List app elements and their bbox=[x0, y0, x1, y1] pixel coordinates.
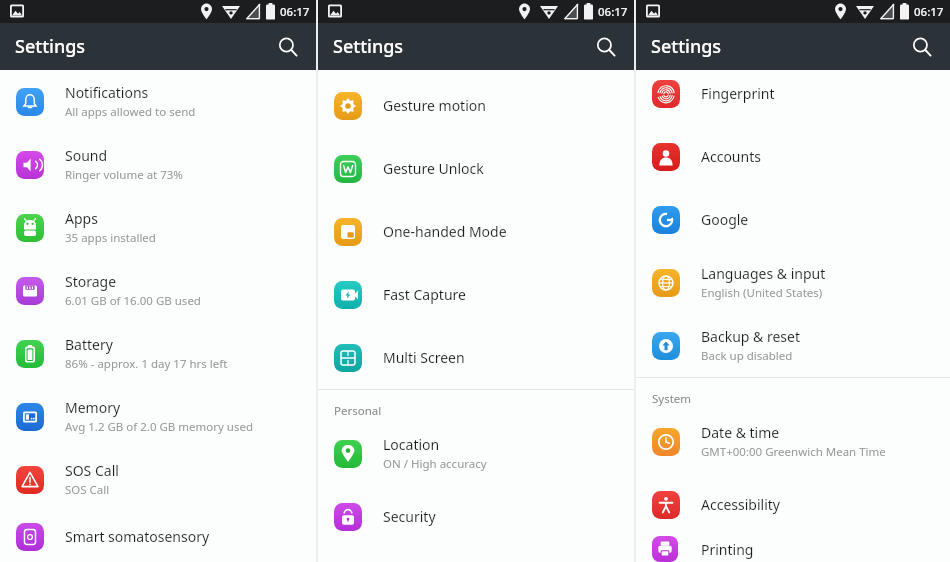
staticText: GMT+00:00 Greenwich Mean Time bbox=[701, 444, 886, 460]
button[interactable]: Location bbox=[318, 422, 634, 485]
button[interactable]: Search bbox=[268, 27, 308, 67]
button[interactable]: Accessibility bbox=[636, 473, 950, 536]
staticText: Accounts bbox=[701, 147, 761, 166]
staticText: Ringer volume at 73% bbox=[65, 167, 183, 183]
button[interactable]: Date & time bbox=[636, 410, 950, 473]
button[interactable]: Apps bbox=[0, 196, 316, 259]
staticText: Multi Screen bbox=[383, 348, 465, 367]
staticText: Notifications bbox=[65, 83, 149, 102]
staticText: Gesture Unlock bbox=[383, 159, 484, 178]
button[interactable]: Fingerprint bbox=[636, 62, 950, 125]
staticText: 06:17 bbox=[598, 4, 628, 20]
button[interactable]: Gesture motion bbox=[318, 74, 634, 137]
staticText: Avg 1.2 GB of 2.0 GB memory used bbox=[65, 419, 254, 435]
button[interactable]: Accounts bbox=[636, 125, 950, 188]
staticText: 06:17 bbox=[914, 4, 944, 20]
button[interactable]: Smart somatosensory bbox=[0, 511, 316, 562]
staticText: Location bbox=[383, 435, 440, 454]
staticText: Back up disabled bbox=[701, 348, 793, 364]
staticText: Accessibility bbox=[701, 495, 780, 514]
button[interactable]: Storage bbox=[0, 259, 316, 322]
staticText: System bbox=[652, 391, 692, 407]
button[interactable]: Printing bbox=[636, 536, 950, 562]
staticText: 6.01 GB of 16.00 GB used bbox=[65, 293, 201, 309]
button[interactable]: Memory bbox=[0, 385, 316, 448]
button[interactable]: Backup & reset bbox=[636, 314, 950, 377]
staticText: Memory bbox=[65, 398, 121, 417]
button[interactable]: Search bbox=[902, 27, 942, 67]
staticText: English (United States) bbox=[701, 285, 823, 301]
staticText: Battery bbox=[65, 335, 113, 354]
button[interactable]: Battery bbox=[0, 322, 316, 385]
staticText: SOS Call bbox=[65, 482, 110, 498]
button[interactable]: Google bbox=[636, 188, 950, 251]
button[interactable]: Languages & input bbox=[636, 251, 950, 314]
staticText: Apps bbox=[65, 209, 98, 228]
staticText: Settings bbox=[651, 34, 722, 59]
staticText: Google bbox=[701, 210, 749, 229]
button[interactable]: Security bbox=[318, 485, 634, 548]
staticText: Personal bbox=[334, 403, 382, 419]
button[interactable]: Search bbox=[586, 27, 626, 67]
staticText: Sound bbox=[65, 146, 108, 165]
staticText: All apps allowed to send bbox=[65, 104, 196, 120]
staticText: Smart somatosensory bbox=[65, 527, 210, 546]
staticText: 35 apps installed bbox=[65, 230, 156, 246]
staticText: Printing bbox=[701, 540, 754, 559]
staticText: SOS Call bbox=[65, 461, 119, 480]
staticText: Settings bbox=[15, 34, 86, 59]
staticText: ON / High accuracy bbox=[383, 456, 487, 472]
button[interactable]: Fast Capture bbox=[318, 263, 634, 326]
button[interactable]: SOS Call bbox=[0, 448, 316, 511]
staticText: Date & time bbox=[701, 423, 780, 442]
button[interactable]: Gesture Unlock bbox=[318, 137, 634, 200]
staticText: Storage bbox=[65, 272, 117, 291]
staticText: 86% - approx. 1 day 17 hrs left bbox=[65, 356, 228, 372]
staticText: Languages & input bbox=[701, 264, 826, 283]
staticText: Backup & reset bbox=[701, 327, 800, 346]
staticText: Fingerprint bbox=[701, 84, 775, 103]
staticText: Settings bbox=[333, 34, 404, 59]
staticText: Security bbox=[383, 507, 436, 526]
staticText: One-handed Mode bbox=[383, 222, 507, 241]
button[interactable]: Sound bbox=[0, 133, 316, 196]
button[interactable]: Multi Screen bbox=[318, 326, 634, 389]
staticText: Fast Capture bbox=[383, 285, 466, 304]
button[interactable]: Notifications bbox=[0, 70, 316, 133]
staticText: 06:17 bbox=[280, 4, 310, 20]
button[interactable]: One-handed Mode bbox=[318, 200, 634, 263]
staticText: Gesture motion bbox=[383, 96, 486, 115]
